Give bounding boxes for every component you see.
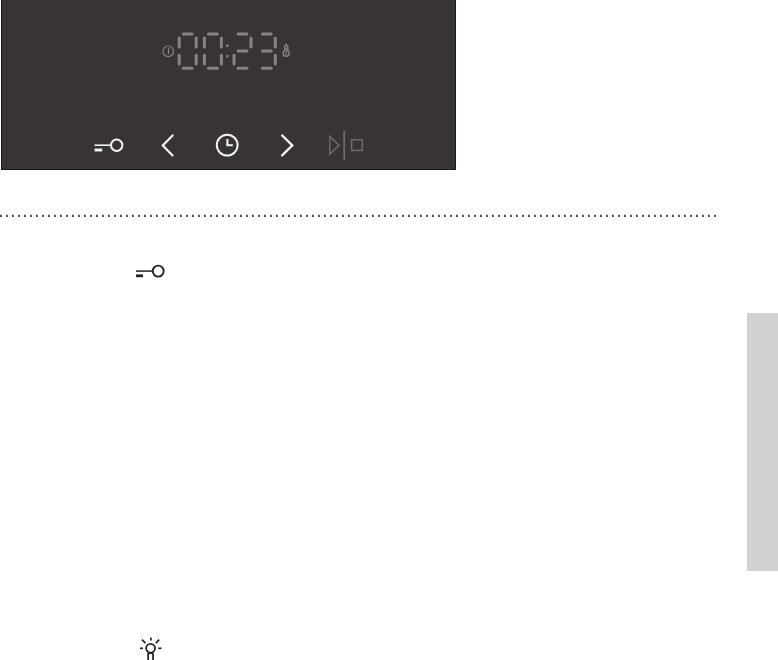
button[interactable]: Previous — [152, 124, 188, 166]
button[interactable]: Stop — [348, 128, 368, 162]
button[interactable]: Start — [322, 128, 350, 162]
button[interactable]: Settings — [85, 124, 133, 166]
button[interactable]: Key lock — [130, 255, 172, 287]
button[interactable]: Next — [268, 124, 304, 166]
button[interactable]: Light — [132, 630, 170, 660]
button[interactable]: Timer — [205, 124, 249, 166]
